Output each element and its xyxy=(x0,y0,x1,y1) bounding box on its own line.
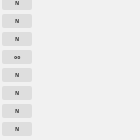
button[interactable]: N xyxy=(2,0,32,10)
staticText: N xyxy=(15,90,20,97)
staticText: N xyxy=(15,72,20,79)
staticText: N xyxy=(15,0,20,7)
button[interactable]: oo xyxy=(2,50,32,64)
button[interactable]: N xyxy=(2,86,32,100)
staticText: N xyxy=(15,108,20,115)
button[interactable]: N xyxy=(2,32,32,46)
staticText: N xyxy=(15,18,20,25)
button[interactable]: N xyxy=(2,122,32,136)
staticText: N xyxy=(15,126,20,133)
button[interactable]: N xyxy=(2,104,32,118)
button[interactable]: N xyxy=(2,14,32,28)
staticText: oo xyxy=(14,54,21,61)
staticText: N xyxy=(15,36,20,43)
button[interactable]: N xyxy=(2,68,32,82)
